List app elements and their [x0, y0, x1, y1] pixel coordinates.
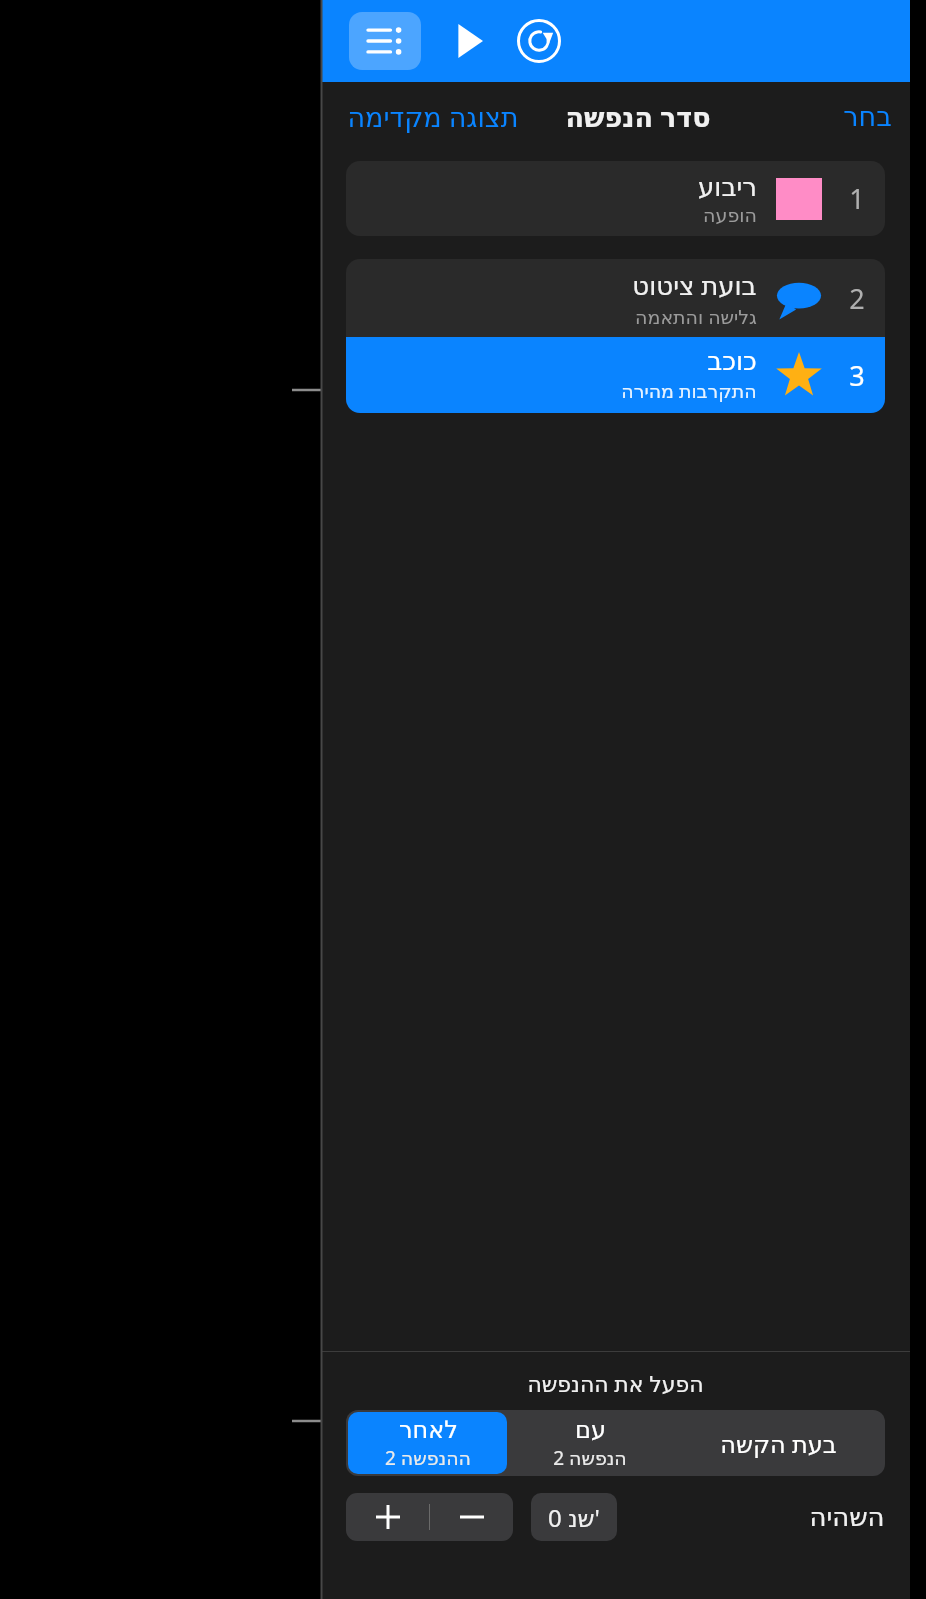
staticText: התקרבות מהירה — [621, 378, 757, 404]
staticText: בועת ציטוט — [632, 267, 757, 302]
staticText: כוכב — [707, 346, 757, 376]
button[interactable]: בועת ציטוט — [346, 259, 885, 337]
staticText: 1 — [849, 180, 865, 217]
staticText: ריבוע — [698, 172, 757, 202]
button[interactable]: Play — [441, 13, 497, 69]
button[interactable]: בחר — [843, 101, 892, 132]
button[interactable]: Animation list — [349, 12, 421, 70]
staticText: 3 — [849, 357, 865, 394]
button[interactable]: בעת הקשה — [673, 1412, 883, 1474]
button[interactable]: תצוגה מקדימה — [347, 98, 519, 135]
button[interactable]: עם — [511, 1412, 669, 1474]
button[interactable]: ריבוע — [346, 161, 885, 236]
staticText: הפעל את ההנפשה — [527, 1368, 704, 1398]
staticText: סדר הנפשה — [565, 98, 711, 135]
button[interactable]: 0 שנ' — [531, 1493, 617, 1541]
staticText: תצוגה מקדימה — [347, 98, 519, 135]
staticText: עם — [575, 1416, 606, 1444]
staticText: הנפשה 2 — [553, 1445, 627, 1471]
button[interactable]: Loop — [511, 13, 567, 69]
staticText: בחר — [843, 101, 892, 132]
button[interactable]: Decrease delay — [430, 1493, 513, 1541]
button[interactable]: לאחר — [348, 1412, 507, 1474]
staticText: 2 — [849, 280, 865, 317]
staticText: הופעה — [703, 204, 757, 226]
staticText: גלישה והתאמה — [635, 304, 757, 330]
staticText: 0 שנ' — [548, 1501, 600, 1534]
button[interactable]: כוכב — [346, 337, 885, 413]
staticText: לאחר — [399, 1416, 458, 1444]
staticText: ההנפשה 2 — [385, 1445, 471, 1471]
staticText: השהיה — [809, 1502, 885, 1532]
staticText: בעת הקשה — [720, 1427, 837, 1460]
button[interactable]: Increase delay — [346, 1493, 429, 1541]
